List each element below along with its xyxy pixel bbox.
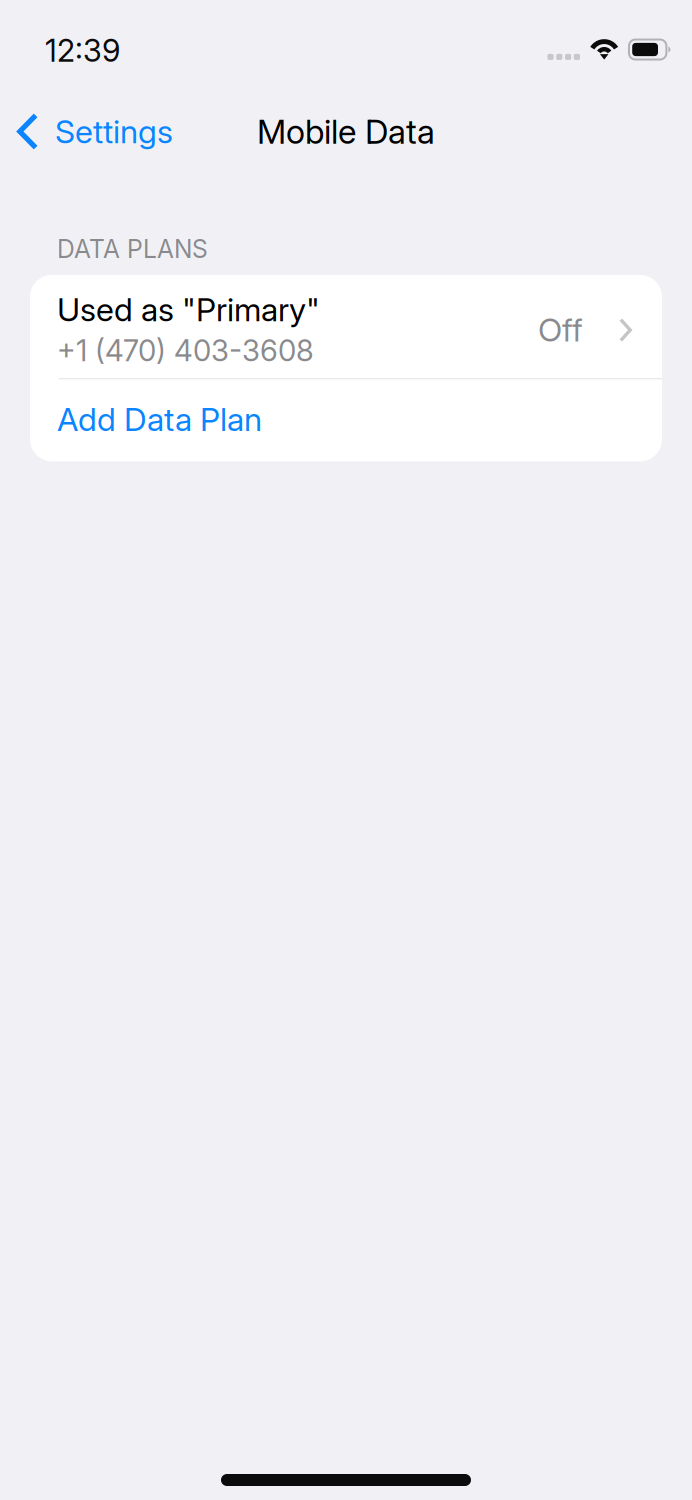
button[interactable]: Used as "Primary"	[30, 275, 662, 378]
staticText: Add Data Plan	[57, 400, 262, 439]
staticText: Settings	[55, 112, 173, 151]
button[interactable]: Add Data Plan	[30, 379, 662, 461]
staticText: DATA PLANS	[57, 234, 208, 264]
staticText: Used as "Primary"	[57, 290, 320, 329]
staticText: +1 (470) 403-3608	[57, 333, 314, 368]
staticText: 12:39	[45, 32, 120, 69]
staticText: Off	[538, 310, 583, 349]
button[interactable]: Settings	[0, 103, 187, 159]
staticText: Mobile Data	[257, 111, 435, 152]
